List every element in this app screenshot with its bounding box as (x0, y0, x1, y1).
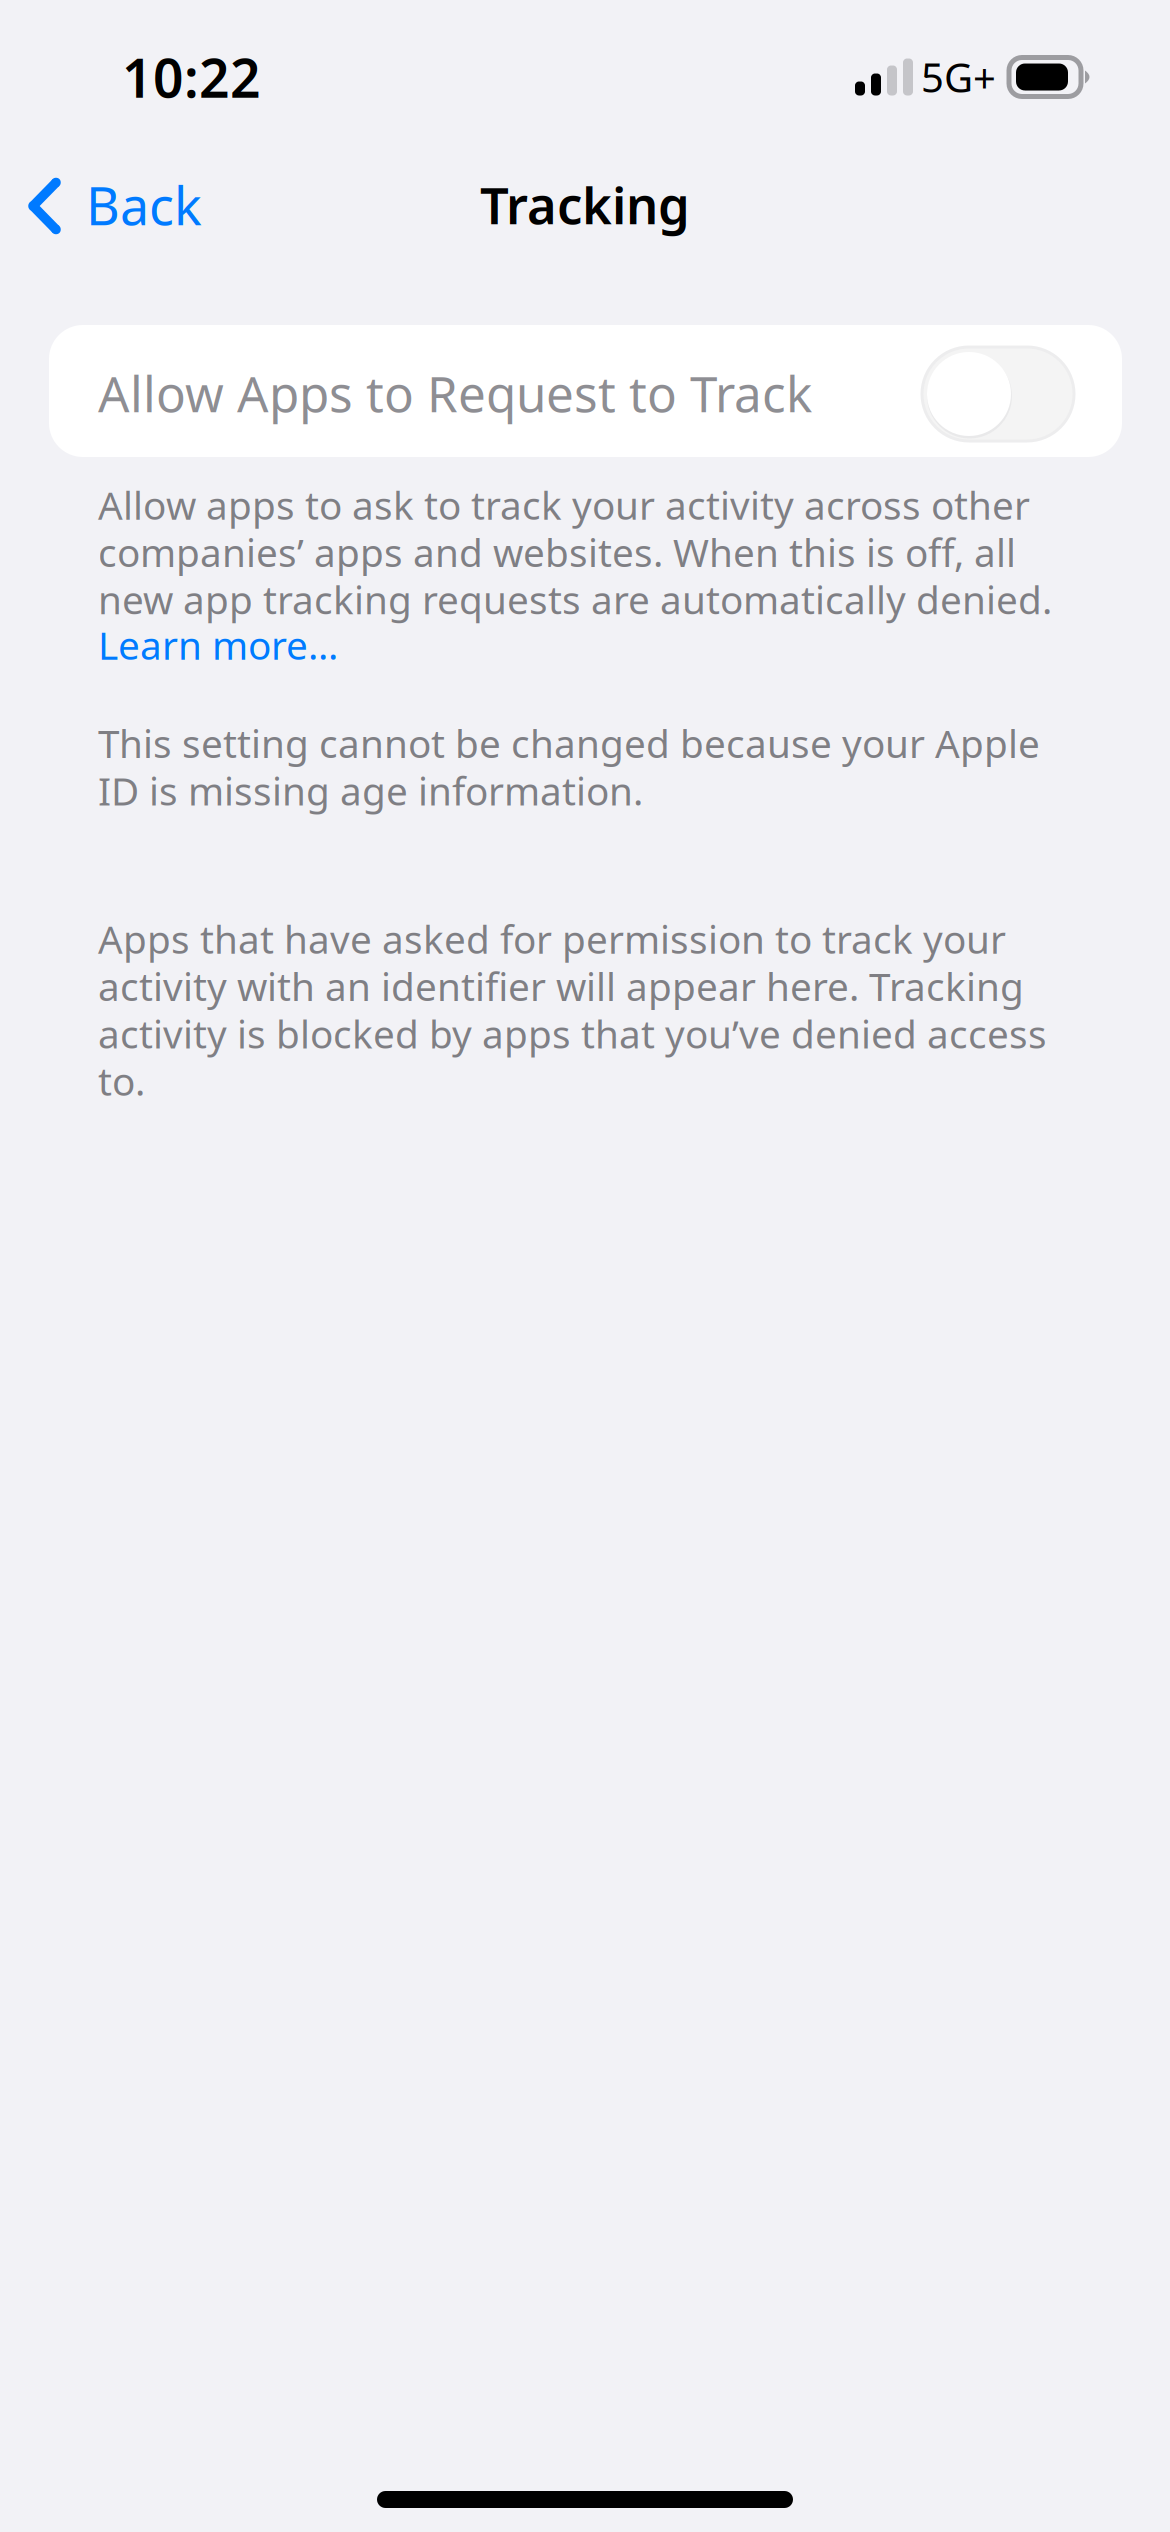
staticText: Allow apps to ask to track your activity… (98, 479, 1052, 625)
staticText: Tracking (480, 171, 690, 238)
staticText: Back (86, 170, 202, 240)
staticText: 5G+ (921, 50, 996, 103)
button[interactable]: Allow Apps to Request to Track (49, 325, 1122, 457)
button[interactable]: Back (0, 158, 222, 244)
button[interactable]: Learn more... (98, 625, 1072, 670)
staticText: This setting cannot be changed because y… (98, 717, 1040, 816)
staticText: Apps that have asked for permission to t… (98, 913, 1047, 1106)
staticText: Allow Apps to Request to Track (98, 360, 812, 426)
staticText: 10:22 (122, 42, 261, 112)
staticText: Learn more... (98, 619, 338, 670)
